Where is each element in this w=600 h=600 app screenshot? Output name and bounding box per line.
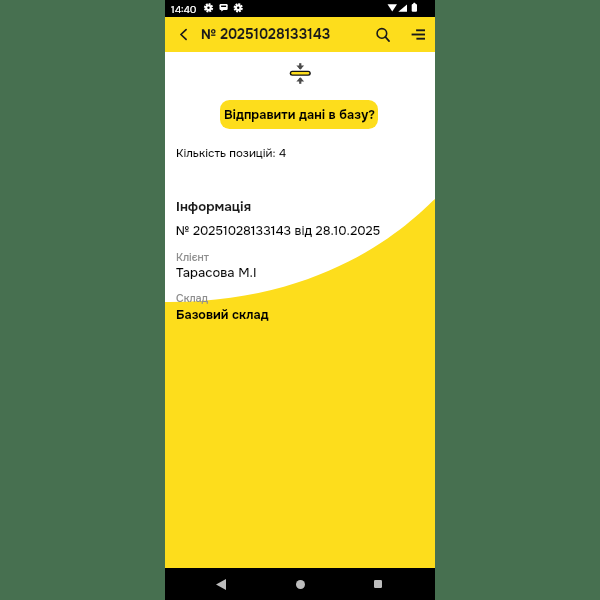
button[interactable]: Filter bbox=[404, 17, 432, 52]
staticText: № 20251028133143 від 28.10.2025 bbox=[176, 223, 381, 239]
staticText: Клієнт bbox=[176, 251, 209, 265]
button[interactable]: Home bbox=[288, 572, 312, 596]
button[interactable]: Sync data bbox=[287, 60, 313, 86]
staticText: Тарасова М.І bbox=[176, 264, 257, 281]
button[interactable]: Відправити дані в базу? bbox=[220, 100, 378, 129]
staticText: № 20251028133143 bbox=[201, 25, 331, 43]
button[interactable]: Recents bbox=[366, 572, 390, 596]
staticText: Відправити дані в базу? bbox=[224, 107, 375, 123]
button[interactable]: Back bbox=[172, 17, 194, 52]
staticText: Склад bbox=[176, 292, 209, 306]
staticText: 14:40 bbox=[171, 3, 197, 16]
staticText: Кількість позицій: 4 bbox=[176, 146, 287, 161]
button[interactable]: Back bbox=[209, 572, 233, 596]
button[interactable]: Search bbox=[369, 17, 397, 52]
staticText: Базовий склад bbox=[176, 307, 269, 323]
staticText: Інформація bbox=[176, 198, 252, 215]
